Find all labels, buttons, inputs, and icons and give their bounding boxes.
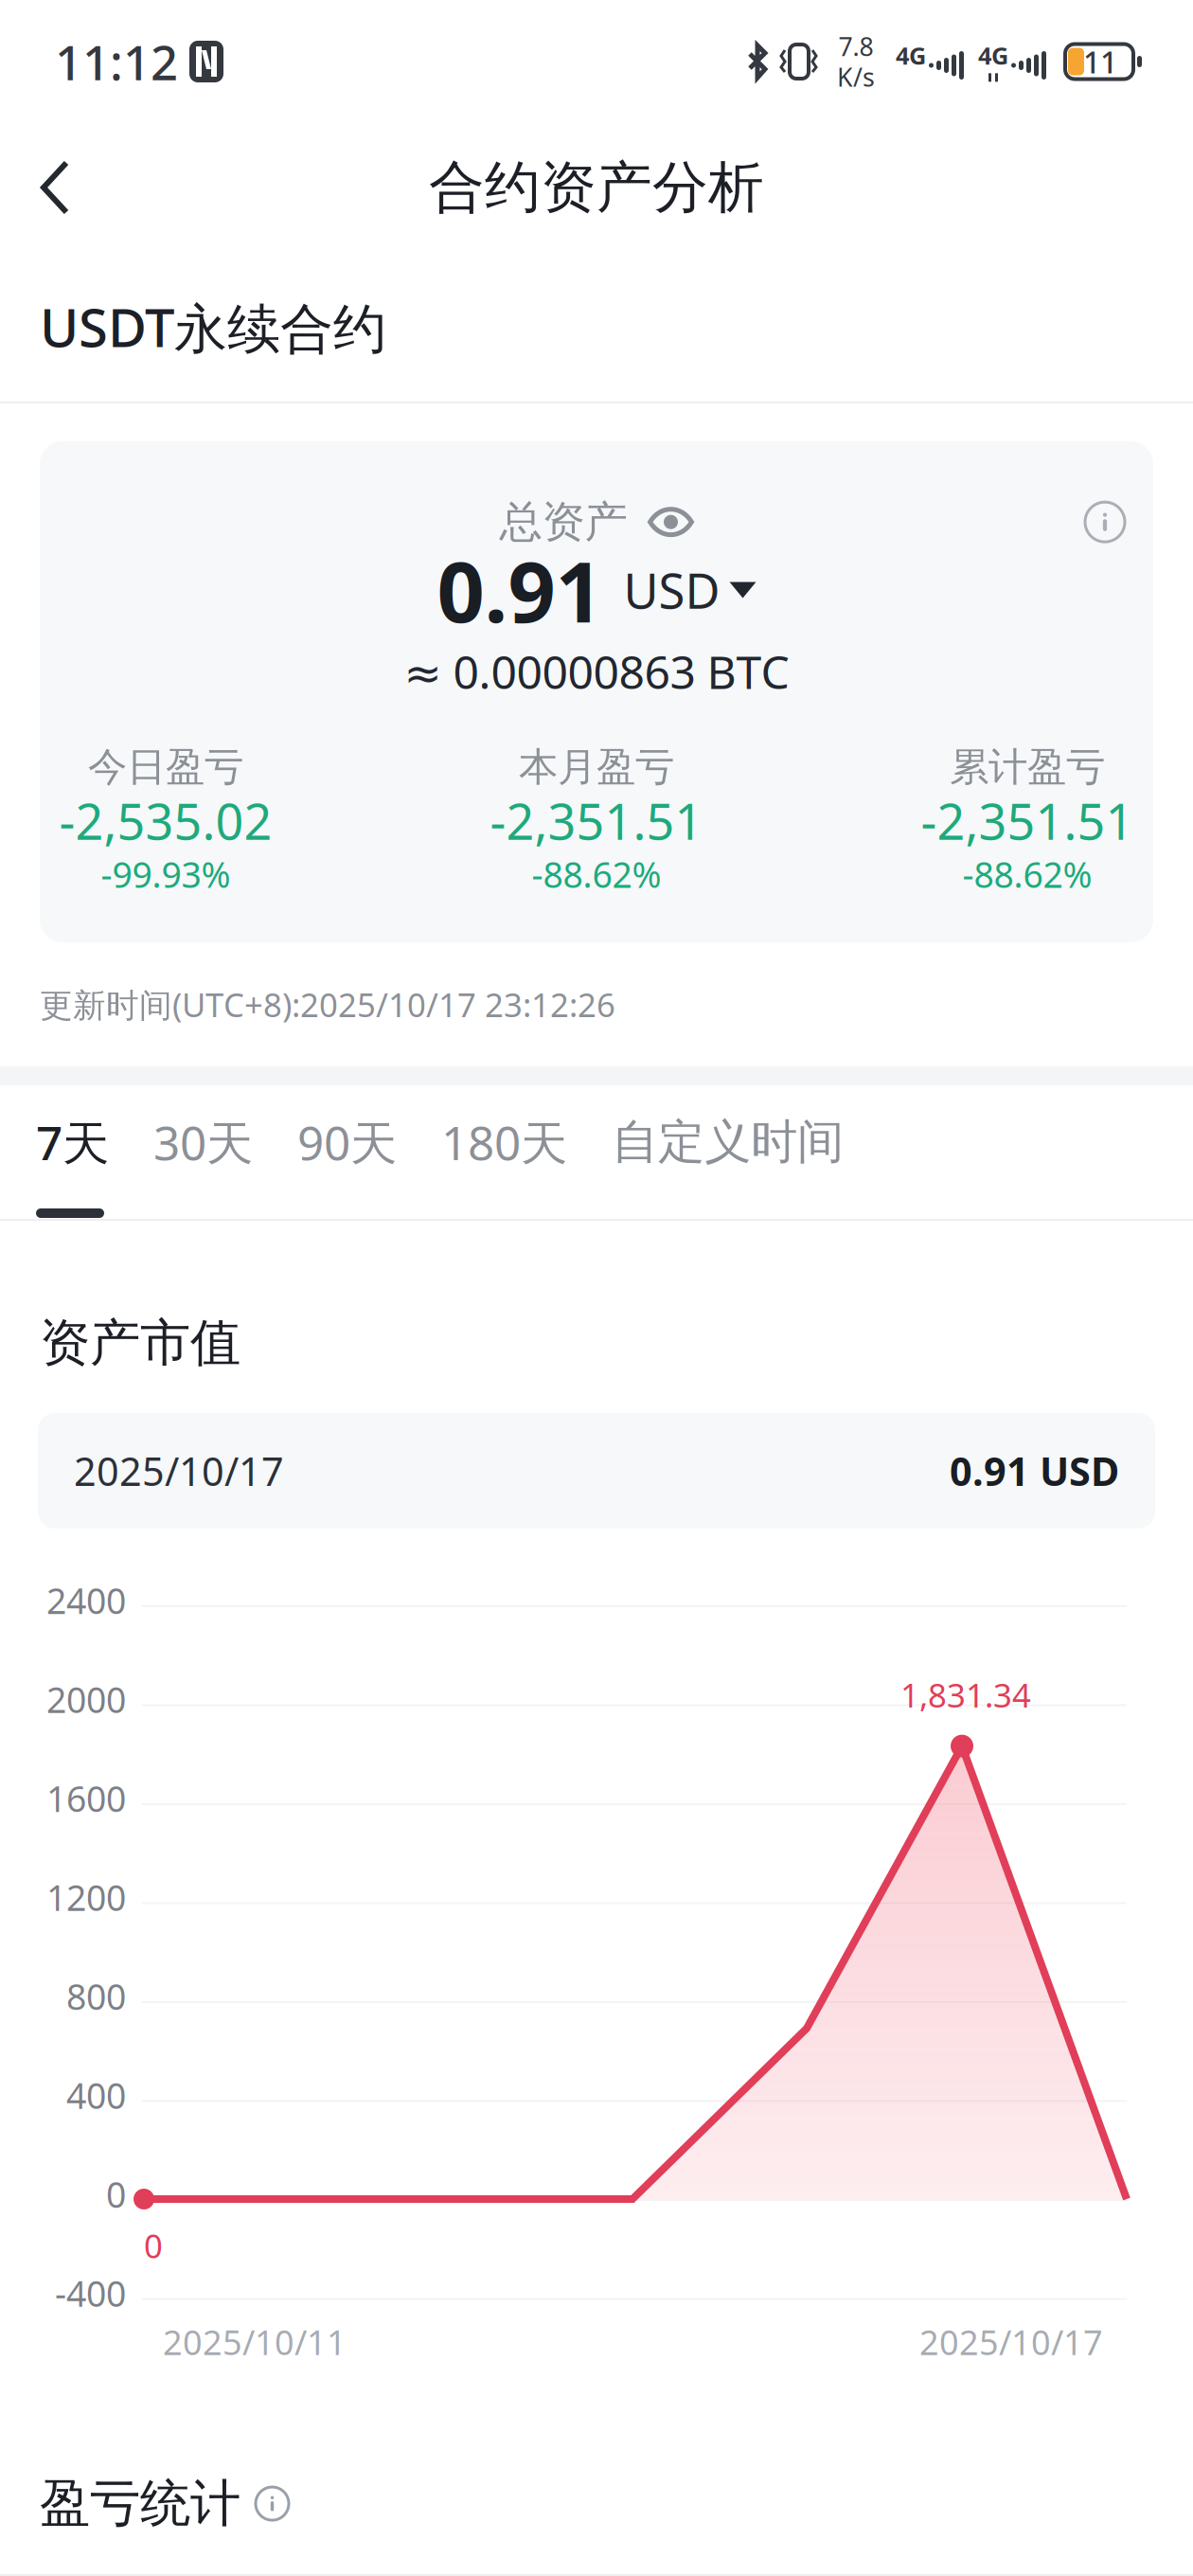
- staticText: -88.62%: [962, 851, 1092, 898]
- button[interactable]: 180天: [441, 1111, 612, 1173]
- staticText: 1200: [46, 1874, 126, 1921]
- staticText: 2025/10/11: [163, 2319, 347, 2365]
- staticText: 4G: [896, 39, 926, 71]
- staticText: 合约资产分析: [429, 153, 764, 222]
- staticText: 800: [66, 1973, 126, 2020]
- staticText: 11:12: [55, 30, 178, 93]
- button[interactable]: USD: [603, 558, 756, 622]
- staticText: 2025/10/17: [919, 2319, 1103, 2365]
- staticText: 30天: [153, 1111, 253, 1173]
- staticText: -99.93%: [101, 851, 231, 898]
- staticText: 更新时间(UTC+8):2025/10/17 23:12:26: [40, 983, 615, 1026]
- staticText: 2000: [46, 1676, 126, 1723]
- staticText: -400: [55, 2270, 126, 2317]
- staticText: 本月盈亏: [519, 743, 674, 791]
- staticText: 盈亏统计: [40, 2473, 240, 2535]
- staticText: 今日盈亏: [88, 743, 243, 791]
- staticText: USD: [623, 558, 720, 622]
- staticText: 2400: [46, 1577, 126, 1624]
- button[interactable]: Back: [0, 127, 110, 248]
- staticText: 90天: [297, 1111, 397, 1173]
- staticText: 2025/10/17: [74, 1445, 284, 1497]
- button[interactable]: 7天: [36, 1111, 153, 1173]
- staticText: -88.62%: [532, 851, 661, 898]
- staticText: K/s: [837, 60, 875, 94]
- button[interactable]: 30天: [153, 1111, 297, 1173]
- staticText: 0: [106, 2171, 126, 2218]
- button[interactable]: Info: [1085, 502, 1125, 542]
- staticText: 0.91 USD: [950, 1445, 1119, 1497]
- staticText: 7天: [36, 1111, 109, 1173]
- staticText: 0.91: [437, 535, 603, 645]
- button[interactable]: 90天: [297, 1111, 441, 1173]
- staticText: 180天: [441, 1111, 567, 1173]
- staticText: 1,831.34: [900, 1673, 1031, 1717]
- staticText: 资产市值: [40, 1312, 240, 1374]
- staticText: ≈ 0.00000863 BTC: [404, 641, 789, 702]
- button[interactable]: Toggle balance visibility: [648, 501, 694, 543]
- staticText: 7.8: [838, 29, 873, 63]
- button[interactable]: 自定义时间: [612, 1113, 844, 1171]
- staticText: -2,351.51: [490, 788, 703, 853]
- staticText: -2,351.51: [921, 788, 1134, 853]
- staticText: 11: [1083, 41, 1117, 82]
- staticText: 自定义时间: [612, 1113, 844, 1171]
- staticText: 400: [66, 2072, 126, 2119]
- staticText: 1600: [46, 1775, 126, 1822]
- staticText: 4G: [978, 39, 1008, 71]
- staticText: 总资产: [499, 496, 627, 548]
- staticText: -2,535.02: [59, 788, 272, 853]
- staticText: 0: [144, 2224, 163, 2267]
- staticText: USDT永续合约: [40, 291, 386, 362]
- staticText: 累计盈亏: [950, 743, 1105, 791]
